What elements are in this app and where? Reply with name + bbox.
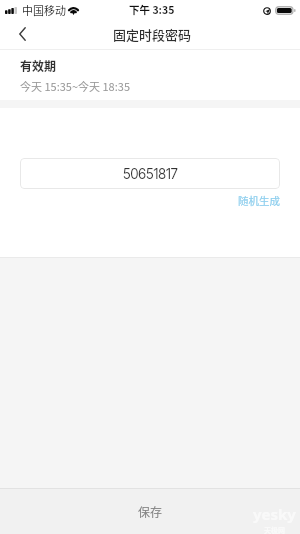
- button[interactable]: 随机生成: [238, 191, 300, 210]
- button[interactable]: Back: [0, 20, 42, 50]
- staticText: 中国移动: [22, 2, 66, 18]
- staticText: 今天 15:35~今天 18:35: [20, 78, 130, 94]
- staticText: 50651817: [123, 166, 178, 182]
- other: Location: [263, 7, 271, 15]
- staticText: 有效期: [20, 57, 57, 74]
- button[interactable]: 有效期: [0, 50, 300, 100]
- staticText: 下午 3:35: [129, 2, 175, 17]
- staticText: 固定时段密码: [113, 25, 192, 44]
- button[interactable]: 保存: [0, 488, 300, 534]
- staticText: 随机生成: [238, 193, 280, 208]
- staticText: yesky: [253, 504, 296, 524]
- staticText: 保存: [138, 503, 163, 520]
- staticText: 天极网: [264, 525, 285, 534]
- other: Battery: [275, 6, 296, 15]
- button[interactable]: 50651817: [20, 158, 280, 189]
